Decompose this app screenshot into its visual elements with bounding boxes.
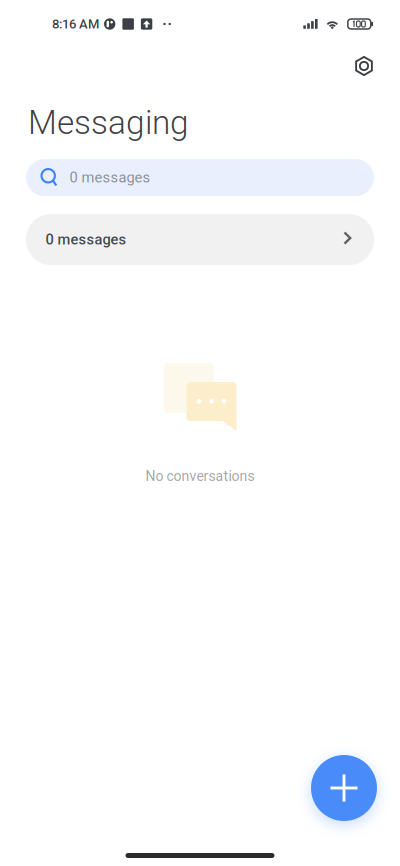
- staticText: 0 messages: [45, 231, 126, 248]
- button[interactable]: 0 messages: [26, 214, 374, 265]
- button[interactable]: 0 messages: [26, 159, 374, 196]
- button[interactable]: New conversation: [311, 755, 377, 821]
- staticText: No conversations: [145, 468, 254, 484]
- staticText: 8:16 AM: [52, 16, 99, 32]
- staticText: Messaging: [28, 103, 189, 142]
- button[interactable]: Settings: [343, 46, 385, 86]
- staticText: 0 messages: [69, 169, 150, 186]
